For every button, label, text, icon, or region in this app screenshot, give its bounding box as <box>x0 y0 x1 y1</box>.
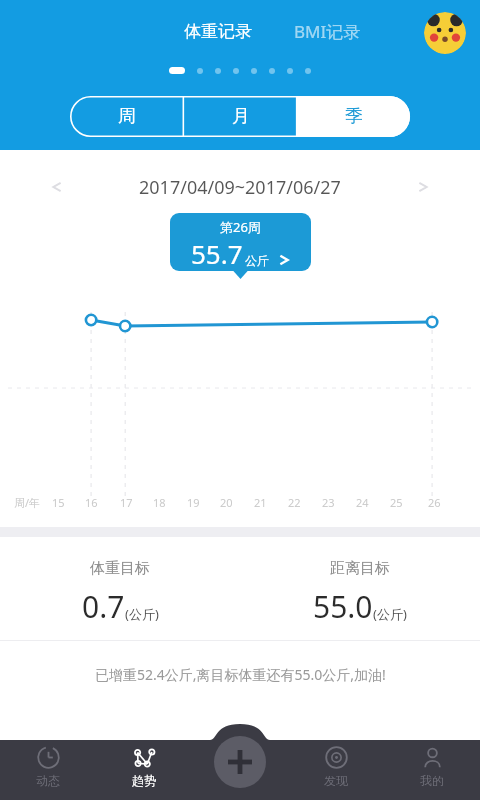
staticText: 21 <box>254 495 267 510</box>
staticText: 22 <box>288 495 301 510</box>
button[interactable]: 动态 <box>0 728 96 800</box>
button[interactable]: 体重目标 <box>0 545 240 640</box>
staticText: 周 <box>118 105 136 128</box>
staticText: 15 <box>52 495 65 510</box>
staticText: 距离目标 <box>330 559 390 578</box>
button[interactable]: 距离目标 <box>240 545 480 640</box>
staticText: 24 <box>356 495 369 510</box>
button[interactable]: Next <box>410 174 436 200</box>
staticText: 体重目标 <box>90 559 150 578</box>
staticText: 公斤 <box>245 253 269 268</box>
staticText: (公斤) <box>373 605 407 623</box>
staticText: 16 <box>85 495 98 510</box>
staticText: 第26周 <box>220 218 261 236</box>
button[interactable]: 体重记录 <box>178 15 258 48</box>
staticText: 周/年 <box>14 495 41 510</box>
button[interactable]: 趋势 <box>96 728 192 800</box>
button[interactable]: Profile <box>424 12 466 54</box>
button[interactable]: 发现 <box>288 728 384 800</box>
staticText: 0.7 <box>82 586 125 627</box>
staticText: 已增重52.4公斤,离目标体重还有55.0公斤,加油! <box>95 665 386 684</box>
staticText: 55.0 <box>313 586 373 627</box>
staticText: 26 <box>428 495 441 510</box>
staticText: 25 <box>390 495 403 510</box>
button[interactable]: 我的 <box>384 728 480 800</box>
staticText: 20 <box>220 495 233 510</box>
staticText: 我的 <box>420 773 444 788</box>
button[interactable]: 季 <box>297 96 410 137</box>
staticText: 动态 <box>36 773 60 788</box>
staticText: 55.7 <box>191 236 243 271</box>
button[interactable]: BMI记录 <box>288 14 367 49</box>
staticText: 18 <box>153 495 166 510</box>
button[interactable]: 周 <box>70 96 184 137</box>
staticText: (公斤) <box>125 605 159 623</box>
staticText: 发现 <box>324 773 348 788</box>
staticText: 19 <box>187 495 200 510</box>
staticText: 月 <box>232 105 250 128</box>
button[interactable]: Previous <box>44 174 70 200</box>
staticText: 17 <box>120 495 133 510</box>
button[interactable]: Add <box>214 736 266 788</box>
staticText: 2017/04/09~2017/06/27 <box>139 175 341 200</box>
staticText: 体重记录 <box>184 21 252 42</box>
staticText: BMI记录 <box>294 20 361 43</box>
button[interactable]: 月 <box>184 96 297 137</box>
staticText: 趋势 <box>132 773 156 788</box>
staticText: 季 <box>345 105 363 128</box>
staticText: 23 <box>322 495 335 510</box>
